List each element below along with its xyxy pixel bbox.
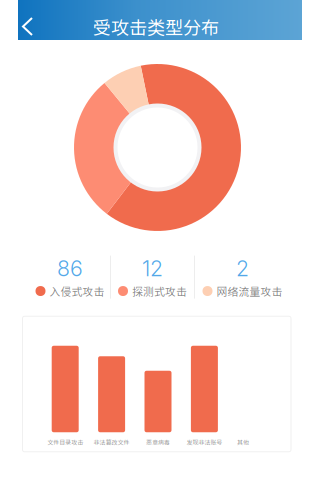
- staticText: 入侵式攻击: [49, 283, 104, 299]
- staticText: 发现非法账号: [186, 438, 222, 447]
- staticText: 86: [57, 255, 83, 281]
- staticText: 网络流量攻击: [216, 283, 282, 299]
- staticText: 非法篡改文件: [94, 438, 130, 447]
- staticText: 探测式攻击: [132, 283, 187, 299]
- button[interactable]: Back: [18, 13, 46, 40]
- staticText: 恶意病毒: [146, 438, 170, 447]
- staticText: 受攻击类型分布: [93, 13, 219, 40]
- staticText: 文件目录攻击: [47, 438, 83, 447]
- staticText: 其他: [237, 438, 249, 447]
- staticText: 2: [236, 255, 249, 281]
- staticText: 12: [142, 255, 163, 281]
